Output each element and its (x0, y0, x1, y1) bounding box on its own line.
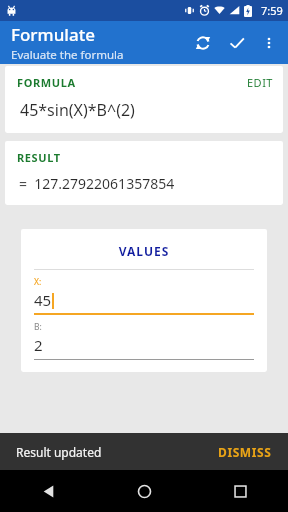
staticText: FORMULA (17, 75, 76, 90)
staticText: 45 (34, 290, 52, 310)
button[interactable]: 45 (34, 290, 254, 310)
button[interactable]: FORMULA (5, 66, 283, 133)
staticText: X: (34, 276, 42, 288)
staticText: B: (34, 321, 42, 333)
button[interactable]: RESULT (5, 141, 283, 205)
staticText: 45*sin(X)*B^(2) (20, 99, 135, 121)
staticText: VALUES (34, 243, 254, 259)
staticText: Formulate (11, 23, 95, 46)
staticText: Evaluate the formula (11, 47, 124, 63)
button[interactable]: Refresh (186, 26, 220, 60)
button[interactable]: EDIT (247, 75, 273, 90)
button[interactable]: More options (254, 28, 284, 58)
staticText: Result updated (16, 444, 102, 460)
button[interactable]: Result updated (0, 433, 288, 470)
staticText: 2 (34, 335, 43, 355)
staticText: RESULT (17, 150, 61, 165)
button[interactable]: Back (0, 470, 96, 512)
button[interactable]: DISMISS (218, 444, 272, 460)
button[interactable]: VALUES (21, 229, 267, 372)
staticText: = 127.27922061357854 (19, 174, 175, 193)
button[interactable]: Done (220, 26, 254, 60)
button[interactable]: Recent apps (192, 470, 288, 512)
staticText: 7:59 (261, 3, 283, 18)
button[interactable]: 2 (34, 335, 254, 355)
button[interactable]: Home (96, 470, 192, 512)
